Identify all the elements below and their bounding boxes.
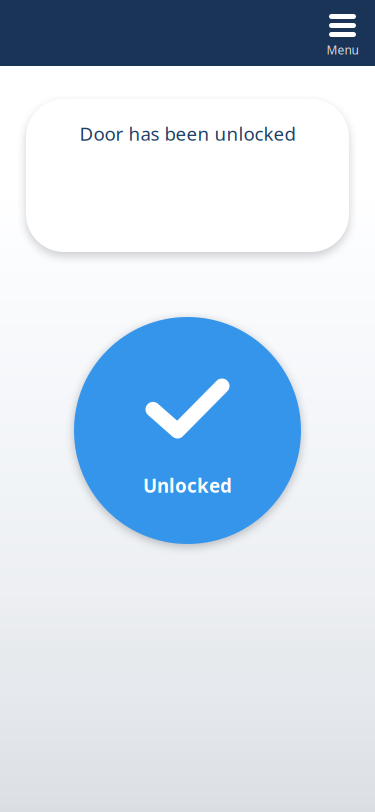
staticText: Door has been unlocked: [79, 121, 295, 146]
button[interactable]: Unlocked: [74, 317, 301, 544]
staticText: Menu: [326, 42, 358, 58]
button[interactable]: Menu: [319, 0, 375, 66]
staticText: Unlocked: [143, 473, 232, 498]
